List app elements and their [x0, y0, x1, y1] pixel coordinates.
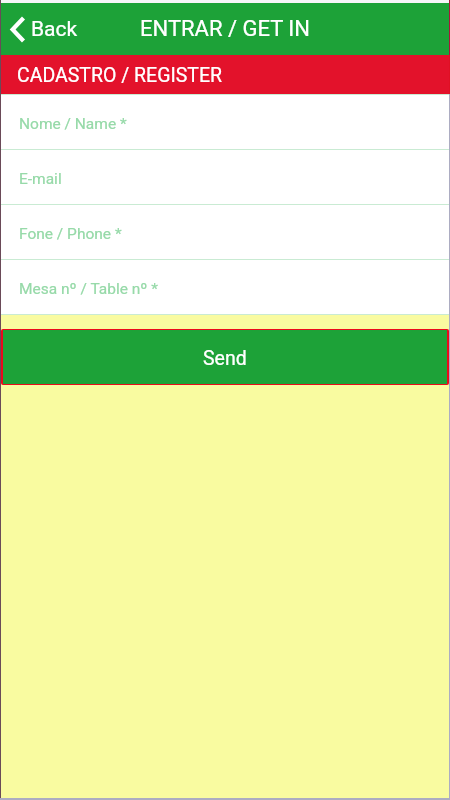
- staticText: ENTRAR / GET IN: [140, 16, 311, 42]
- staticText: Mesa nº / Table nº *: [19, 280, 158, 298]
- staticText: Fone / Phone *: [19, 225, 122, 243]
- staticText: Send: [203, 347, 247, 370]
- staticText: Nome / Name *: [19, 115, 127, 133]
- button[interactable]: E-mail: [0, 150, 450, 204]
- staticText: Back: [31, 17, 78, 42]
- staticText: E-mail: [19, 170, 62, 188]
- button[interactable]: Back: [0, 11, 91, 48]
- button[interactable]: Send: [3, 330, 447, 384]
- button[interactable]: Nome / Name *: [0, 95, 450, 149]
- staticText: CADASTRO / REGISTER: [17, 64, 223, 87]
- button[interactable]: Mesa nº / Table nº *: [0, 260, 450, 314]
- button[interactable]: CADASTRO / REGISTER: [0, 55, 450, 94]
- button[interactable]: Fone / Phone *: [0, 205, 450, 259]
